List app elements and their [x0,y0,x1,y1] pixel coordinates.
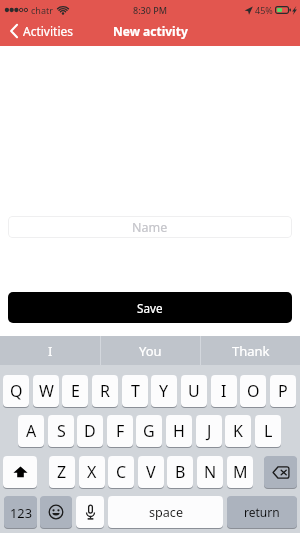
button[interactable]: J [196,415,222,447]
button[interactable]: C [108,456,134,488]
button[interactable]: P [270,375,296,407]
staticText: W [39,380,54,402]
staticText: L [264,420,273,442]
staticText: H [173,420,185,442]
button[interactable]: E [62,375,88,407]
button[interactable]: S [48,415,74,447]
button[interactable]: space [108,496,223,528]
staticText: K [233,420,243,442]
button[interactable]: T [122,375,148,407]
button[interactable]: Q [3,375,29,407]
staticText: A [26,420,37,442]
button[interactable]: H [166,415,192,447]
staticText: U [188,380,200,402]
button[interactable]: A [18,415,44,447]
staticText: E [71,380,80,402]
staticText: 45% [255,4,273,16]
staticText: return [244,504,280,520]
staticText: J [207,420,212,442]
staticText: Save [137,300,163,316]
button[interactable]: 123 [4,496,37,528]
staticText: You [139,342,162,360]
button[interactable]: G [136,415,162,447]
staticText: P [278,380,288,402]
button[interactable]: Z [49,456,75,488]
staticText: New activity [113,23,188,39]
staticText: R [100,380,110,402]
button[interactable]: L [255,415,281,447]
button[interactable]: K [225,415,251,447]
button[interactable]: I [211,375,237,407]
staticText: Name [132,219,168,236]
staticText: I [221,380,227,402]
button[interactable]: I [0,336,100,365]
button[interactable]: Backspace [264,456,297,488]
staticText: Activities [23,23,73,39]
staticText: Q [10,380,23,402]
button[interactable]: Activities [0,21,81,41]
staticText: D [84,420,96,442]
staticText: X [87,461,97,483]
button[interactable]: B [167,456,193,488]
staticText: I [48,342,53,360]
button[interactable]: R [92,375,118,407]
staticText: B [175,461,186,483]
button[interactable]: You [101,336,200,365]
button[interactable]: M [227,456,253,488]
button[interactable]: X [79,456,105,488]
staticText: V [146,461,156,483]
button[interactable]: Emoji [40,496,72,528]
staticText: S [57,420,66,442]
staticText: 123 [10,504,32,521]
button[interactable]: Save [8,292,292,323]
button[interactable]: Shift [3,456,37,488]
staticText: chatr [31,4,53,16]
staticText: Thank [232,342,270,360]
staticText: F [116,420,125,442]
staticText: 8:30 PM [133,4,167,16]
button[interactable]: N [197,456,223,488]
staticText: space [149,504,183,521]
button[interactable]: Dictate [76,496,104,528]
button[interactable]: O [240,375,266,407]
button[interactable]: Thank [201,336,300,365]
button[interactable]: V [138,456,164,488]
staticText: G [143,420,155,442]
staticText: N [204,461,217,483]
staticText: O [247,380,260,402]
button[interactable]: F [107,415,133,447]
button[interactable]: return [227,496,297,528]
button[interactable]: U [181,375,207,407]
button[interactable]: Y [151,375,177,407]
staticText: T [131,380,140,402]
staticText: Z [57,461,67,483]
button[interactable]: Name [8,216,292,238]
button[interactable]: W [33,375,59,407]
staticText: C [116,461,127,483]
staticText: M [233,461,248,483]
button[interactable]: D [77,415,103,447]
staticText: Y [159,380,169,402]
